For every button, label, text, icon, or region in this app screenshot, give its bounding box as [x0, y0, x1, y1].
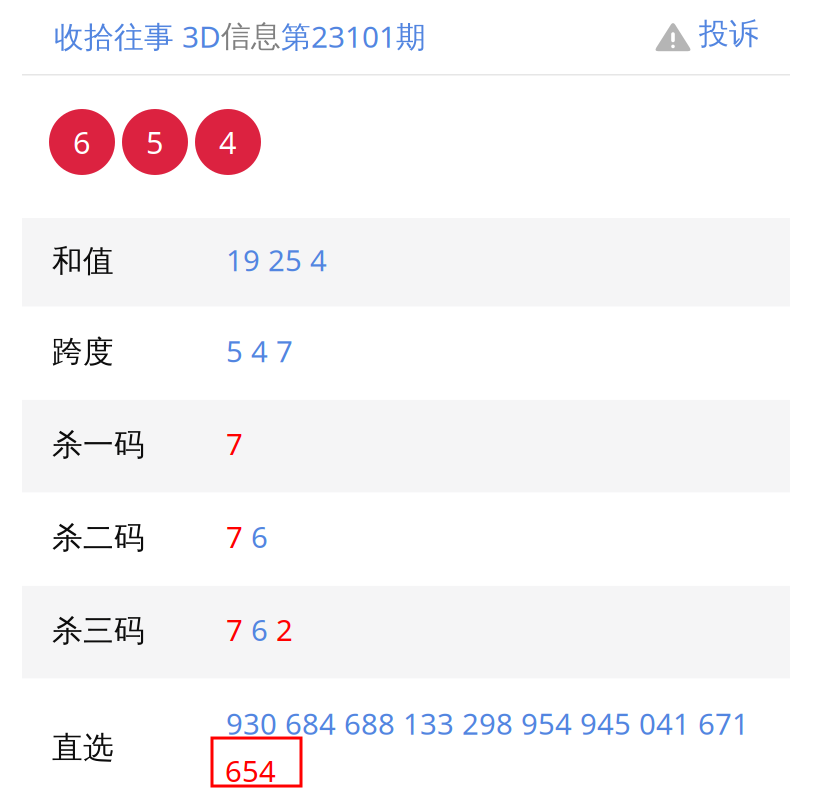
staticText: 2: [276, 610, 293, 649]
button[interactable]: 收拾往事 3D信息第23101期: [54, 16, 426, 56]
staticText: 杀三码: [52, 612, 145, 650]
staticText: 930 684 688 133 298 954 945 041 671: [226, 704, 749, 743]
button[interactable]: 投诉: [654, 15, 759, 52]
staticText: 6: [251, 610, 268, 649]
staticText: 投诉: [699, 15, 759, 52]
staticText: 6: [73, 122, 91, 162]
staticText: 654: [225, 751, 276, 790]
staticText: 杀二码: [52, 519, 145, 557]
staticText: 和值: [52, 242, 114, 280]
staticText: 收拾往事 3D: [54, 16, 221, 56]
staticText: 7: [226, 610, 243, 649]
staticText: 跨度: [52, 333, 114, 371]
staticText: 第23101期: [281, 16, 426, 56]
staticText: 5 4 7: [226, 331, 293, 370]
staticText: 7: [226, 424, 243, 463]
staticText: 19 25 4: [226, 240, 327, 279]
staticText: 杀一码: [52, 426, 145, 464]
staticText: 信息: [221, 17, 281, 55]
staticText: 5: [146, 122, 164, 162]
staticText: 7: [226, 517, 243, 556]
staticText: 6: [251, 517, 268, 556]
staticText: 4: [219, 122, 237, 162]
staticText: 直选: [52, 729, 114, 767]
